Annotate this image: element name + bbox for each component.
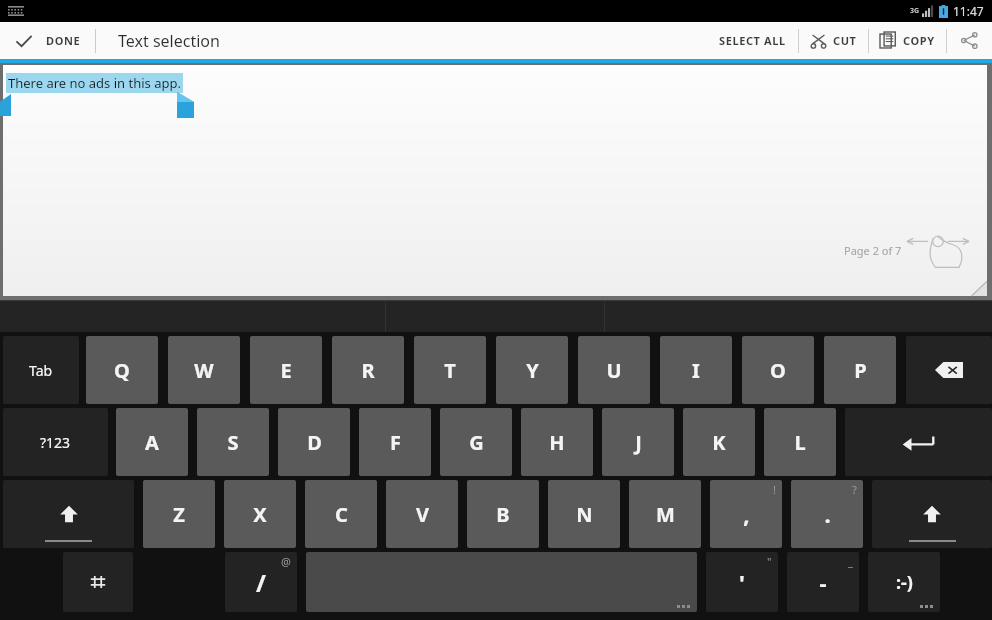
button[interactable]: /: [225, 552, 297, 612]
button[interactable]: CUT: [799, 22, 868, 59]
staticText: O: [770, 357, 786, 384]
staticText: .: [824, 499, 831, 529]
staticText: R: [361, 357, 375, 384]
staticText: _: [848, 554, 853, 569]
staticText: 11:47: [953, 3, 984, 19]
staticText: E: [280, 357, 292, 384]
button[interactable]: ,: [710, 480, 782, 548]
button[interactable]: ': [706, 552, 778, 612]
button[interactable]: SELECT ALL: [707, 22, 798, 59]
staticText: ": [767, 554, 772, 569]
staticText: @: [281, 554, 291, 569]
staticText: U: [606, 357, 622, 384]
staticText: /: [256, 566, 266, 599]
staticText: There are no ads in this app.: [8, 74, 181, 92]
staticText: DONE: [46, 33, 81, 48]
staticText: !: [773, 482, 776, 497]
button[interactable]: P: [824, 336, 896, 404]
button[interactable]: S: [197, 408, 269, 476]
staticText: D: [307, 429, 322, 456]
staticText: S: [227, 429, 239, 456]
button[interactable]: T: [414, 336, 486, 404]
button[interactable]: D: [278, 408, 350, 476]
button[interactable]: I: [660, 336, 732, 404]
button[interactable]: Keyboard settings: [63, 552, 133, 612]
button[interactable]: [872, 480, 992, 548]
button[interactable]: [3, 480, 134, 548]
staticText: X: [253, 501, 267, 528]
button[interactable]: DONE: [0, 22, 95, 59]
staticText: C: [335, 501, 348, 528]
button[interactable]: G: [440, 408, 512, 476]
staticText: 3G: [910, 6, 920, 16]
button[interactable]: Z: [143, 480, 215, 548]
staticText: I: [692, 357, 700, 384]
staticText: :-): [896, 570, 913, 595]
button[interactable]: R: [332, 336, 404, 404]
staticText: Page 2 of 7: [844, 243, 902, 258]
staticText: B: [496, 501, 510, 528]
button[interactable]: COPY: [869, 22, 946, 59]
staticText: SELECT ALL: [719, 33, 786, 48]
button[interactable]: J: [602, 408, 674, 476]
button[interactable]: U: [578, 336, 650, 404]
button[interactable]: Share: [947, 22, 992, 59]
button[interactable]: N: [548, 480, 620, 548]
button[interactable]: .: [791, 480, 863, 548]
staticText: W: [194, 357, 214, 384]
staticText: H: [549, 429, 565, 456]
staticText: CUT: [833, 33, 857, 48]
staticText: P: [854, 357, 867, 384]
button[interactable]: Q: [86, 336, 158, 404]
staticText: Z: [173, 501, 185, 528]
button[interactable]: X: [224, 480, 296, 548]
button[interactable]: O: [742, 336, 814, 404]
button[interactable]: H: [521, 408, 593, 476]
button[interactable]: C: [305, 480, 377, 548]
staticText: N: [576, 501, 593, 528]
button[interactable]: E: [250, 336, 322, 404]
button[interactable]: Tab: [3, 336, 79, 404]
button[interactable]: Backspace: [906, 336, 992, 404]
staticText: K: [712, 429, 726, 456]
staticText: V: [416, 501, 429, 528]
staticText: Q: [114, 357, 130, 384]
button[interactable]: Enter: [845, 408, 992, 476]
staticText: Y: [526, 357, 539, 384]
staticText: ': [739, 567, 745, 597]
staticText: A: [145, 429, 159, 456]
staticText: Text selection: [118, 30, 220, 52]
staticText: ?: [852, 482, 857, 497]
staticText: F: [390, 429, 401, 456]
staticText: Tab: [29, 361, 53, 380]
button[interactable]: K: [683, 408, 755, 476]
button[interactable]: B: [467, 480, 539, 548]
staticText: ?123: [40, 433, 71, 452]
staticText: COPY: [903, 33, 935, 48]
button[interactable]: -: [787, 552, 859, 612]
button[interactable]: W: [168, 336, 240, 404]
button[interactable]: ?123: [3, 408, 108, 476]
button[interactable]: M: [629, 480, 701, 548]
staticText: M: [656, 501, 675, 528]
button[interactable]: :-): [868, 552, 940, 612]
button[interactable]: V: [386, 480, 458, 548]
button[interactable]: F: [359, 408, 431, 476]
staticText: G: [469, 429, 484, 456]
staticText: L: [794, 429, 806, 456]
staticText: T: [444, 357, 456, 384]
staticText: J: [635, 429, 642, 456]
button[interactable]: A: [116, 408, 188, 476]
button[interactable]: L: [764, 408, 836, 476]
button[interactable]: Y: [496, 336, 568, 404]
staticText: -: [819, 567, 827, 597]
staticText: ,: [743, 499, 750, 529]
